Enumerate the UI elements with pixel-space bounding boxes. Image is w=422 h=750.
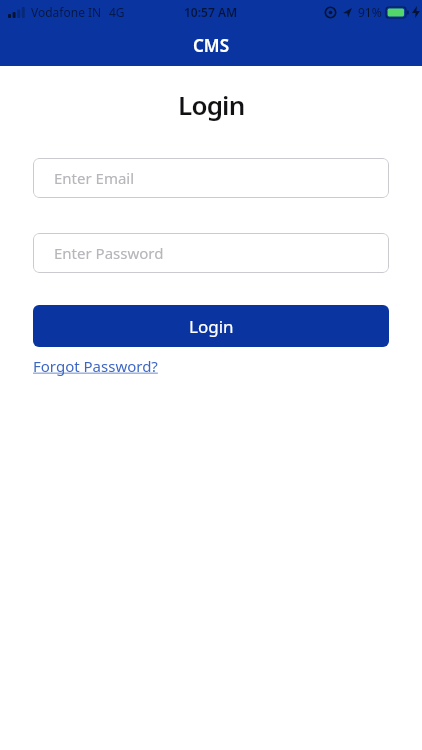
staticText: 4G [109, 4, 125, 20]
staticText: Login [189, 315, 234, 338]
button[interactable]: Forgot Password? [33, 356, 158, 376]
button[interactable]: Enter Email [33, 158, 389, 198]
button[interactable]: Enter Password [33, 233, 389, 273]
staticText: Login [178, 87, 245, 122]
staticText: 10:57 AM [184, 4, 238, 20]
staticText: Enter Email [54, 168, 135, 188]
staticText: CMS [193, 34, 229, 57]
staticText: Forgot Password? [33, 356, 158, 376]
button[interactable]: Login [33, 305, 389, 347]
staticText: Vodafone IN [31, 4, 102, 20]
staticText: Enter Password [54, 243, 164, 263]
staticText: 91% [358, 4, 382, 20]
